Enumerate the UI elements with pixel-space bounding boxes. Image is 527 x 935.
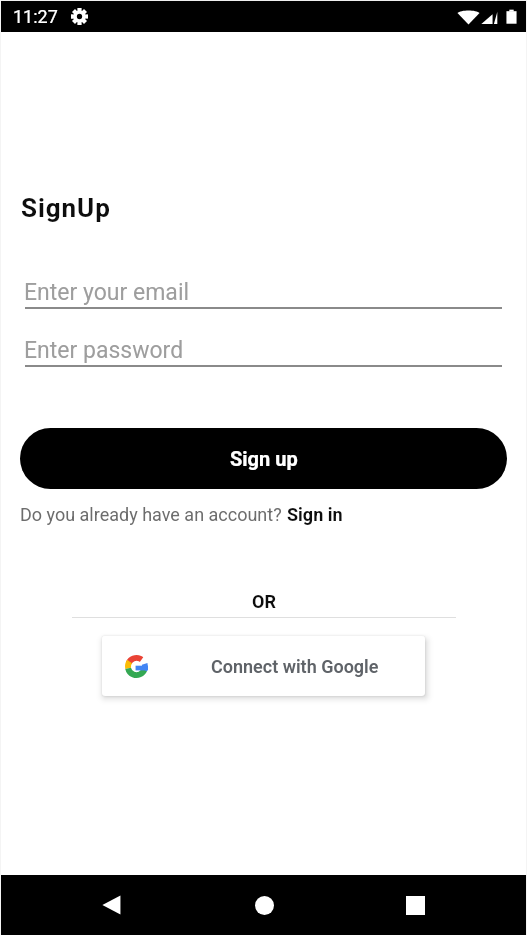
button[interactable]: Sign in [287,504,343,525]
button[interactable]: Connect with Google [102,636,425,696]
button[interactable]: Recent apps [371,875,459,935]
staticText: Sign in [287,504,343,525]
staticText: Do you already have an account? [20,504,287,525]
staticText: Enter your email [24,279,190,306]
staticText: OR [252,591,276,612]
button[interactable]: Back [67,875,155,935]
staticText: Connect with Google [211,656,379,677]
staticText: Enter password [24,337,184,364]
staticText: SignUp [21,193,111,223]
staticText: 11:27 [13,6,58,27]
button[interactable]: Home [220,875,308,935]
button[interactable]: Sign up [20,428,507,489]
staticText: Sign up [230,447,298,470]
